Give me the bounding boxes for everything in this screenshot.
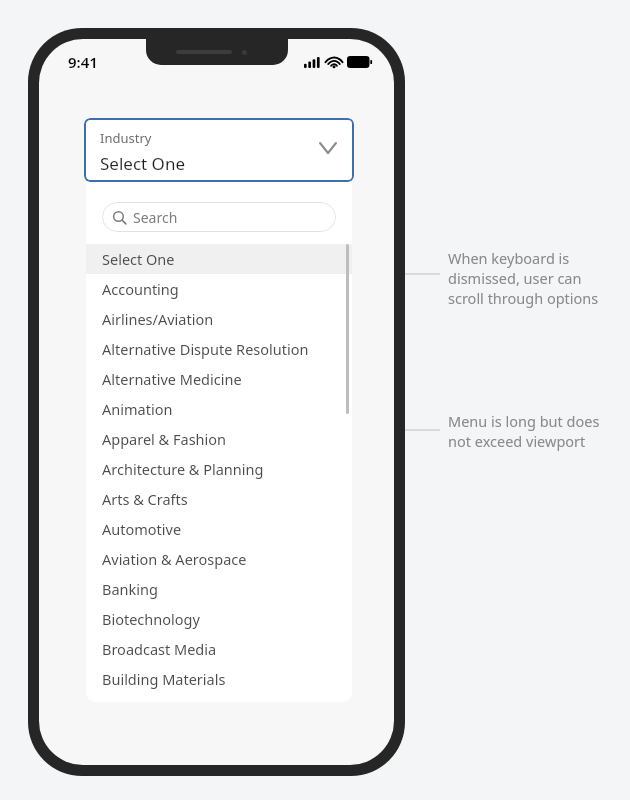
- staticText: Menu is long but does: [448, 411, 600, 431]
- staticText: Select One: [100, 152, 185, 175]
- staticText: 9:41: [68, 52, 98, 72]
- button[interactable]: Biotechnology: [86, 604, 352, 634]
- staticText: Airlines/Aviation: [102, 309, 214, 329]
- staticText: Alternative Dispute Resolution: [102, 339, 309, 359]
- staticText: Building Materials: [102, 669, 226, 689]
- button[interactable]: Building Materials: [86, 664, 352, 694]
- staticText: Arts & Crafts: [102, 489, 188, 509]
- staticText: When keyboard is: [448, 248, 570, 268]
- staticText: Automotive: [102, 519, 182, 539]
- button[interactable]: Accounting: [86, 274, 352, 304]
- staticText: scroll through options: [448, 288, 599, 308]
- staticText: Accounting: [102, 279, 179, 299]
- button[interactable]: Animation: [86, 394, 352, 424]
- staticText: Banking: [102, 579, 158, 599]
- button[interactable]: Automotive: [86, 514, 352, 544]
- button[interactable]: Broadcast Media: [86, 634, 352, 664]
- button[interactable]: Airlines/Aviation: [86, 304, 352, 334]
- staticText: Animation: [102, 399, 173, 419]
- button[interactable]: Select One: [86, 244, 352, 274]
- staticText: Aviation & Aerospace: [102, 549, 247, 569]
- button[interactable]: Industry: [84, 118, 354, 182]
- staticText: not exceed viewport: [448, 431, 586, 451]
- button[interactable]: Aviation & Aerospace: [86, 544, 352, 574]
- staticText: Industry: [100, 129, 152, 147]
- button[interactable]: Arts & Crafts: [86, 484, 352, 514]
- staticText: Alternative Medicine: [102, 369, 242, 389]
- staticText: Broadcast Media: [102, 639, 217, 659]
- staticText: Select One: [102, 249, 175, 269]
- button[interactable]: Alternative Dispute Resolution: [86, 334, 352, 364]
- staticText: Apparel & Fashion: [102, 429, 227, 449]
- staticText: Biotechnology: [102, 609, 200, 629]
- button[interactable]: Search: [102, 202, 336, 232]
- other: Expand dropdown: [320, 143, 336, 153]
- staticText: Architecture & Planning: [102, 459, 264, 479]
- button[interactable]: Alternative Medicine: [86, 364, 352, 394]
- staticText: Search: [133, 208, 178, 227]
- button[interactable]: Banking: [86, 574, 352, 604]
- button[interactable]: Apparel & Fashion: [86, 424, 352, 454]
- button[interactable]: Architecture & Planning: [86, 454, 352, 484]
- staticText: dismissed, user can: [448, 268, 582, 288]
